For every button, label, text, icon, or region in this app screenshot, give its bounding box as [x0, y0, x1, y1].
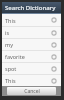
button[interactable]: This — [2, 75, 61, 86]
button[interactable]: This — [2, 14, 61, 26]
button[interactable]: spot — [2, 63, 61, 74]
button[interactable]: favorite — [2, 51, 61, 62]
staticText: my — [5, 41, 51, 48]
staticText: Search Dictionary — [5, 4, 56, 12]
staticText: spot — [5, 65, 51, 72]
staticText: This — [5, 77, 51, 84]
staticText: Cancel — [24, 88, 40, 95]
staticText: is — [5, 29, 51, 36]
staticText: favorite — [5, 53, 51, 60]
button[interactable]: my — [2, 39, 61, 50]
button[interactable]: Cancel — [7, 87, 56, 95]
button[interactable]: is — [2, 27, 61, 38]
staticText: This — [5, 17, 51, 24]
